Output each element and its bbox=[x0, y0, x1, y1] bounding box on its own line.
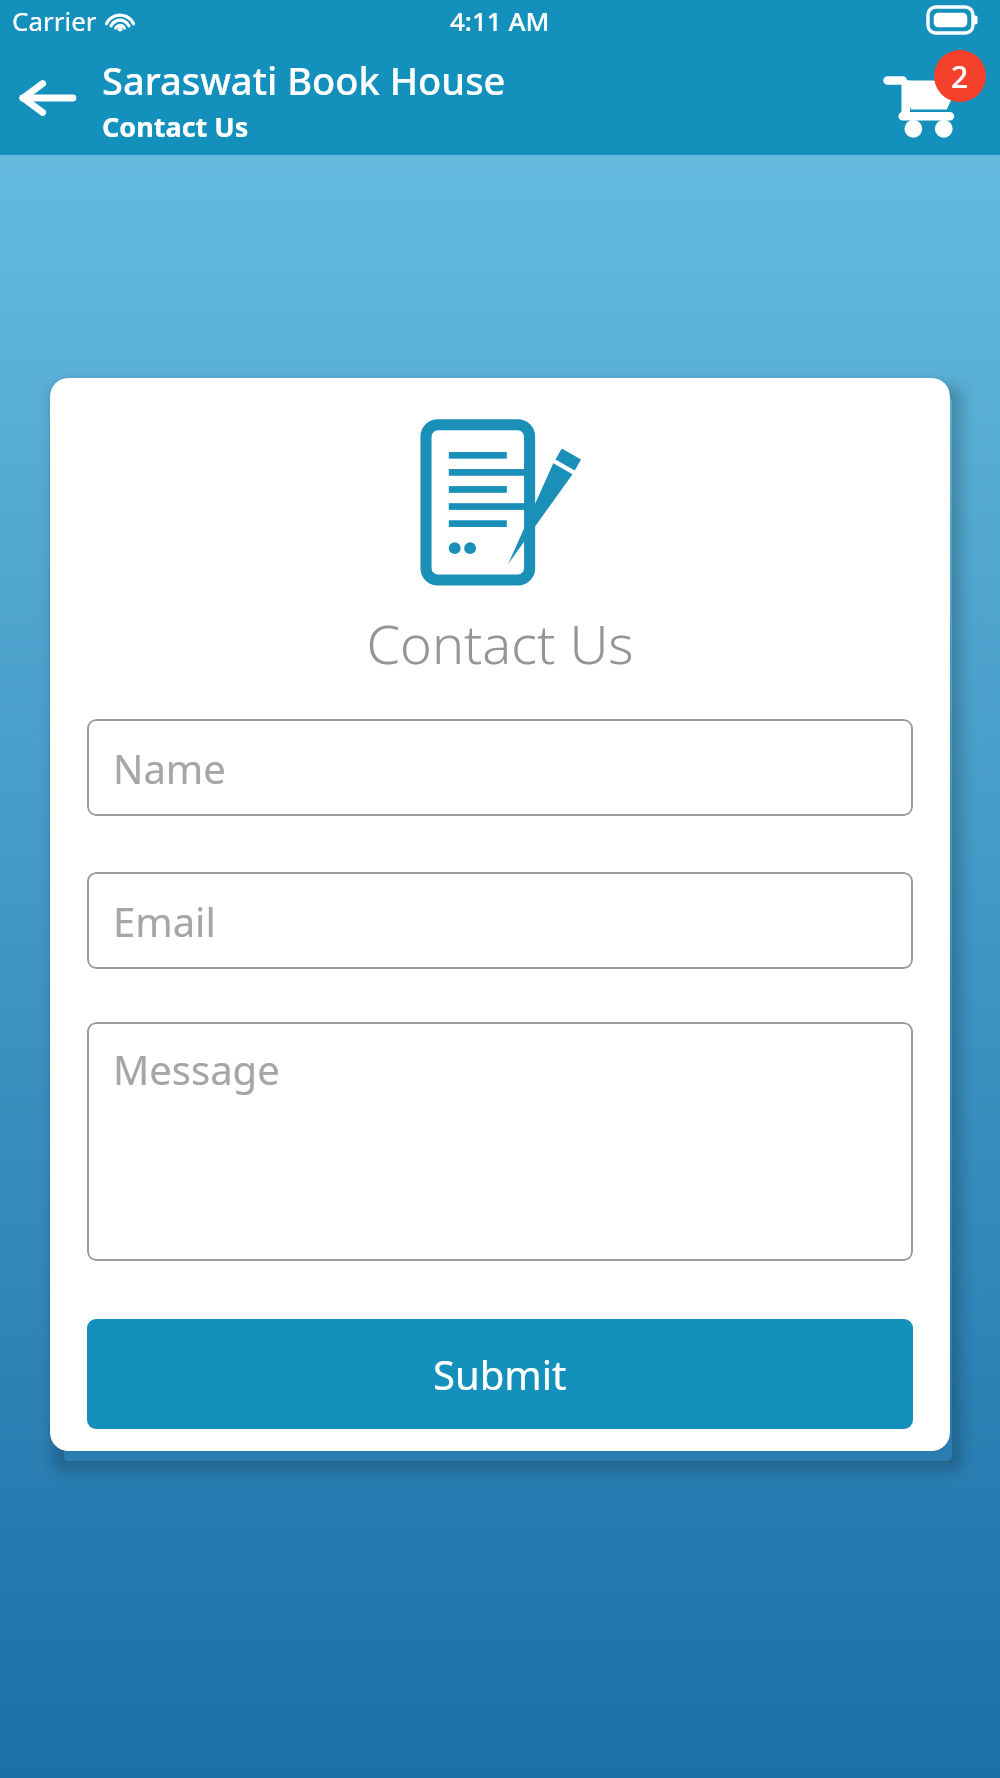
button[interactable]: Email bbox=[87, 872, 913, 969]
staticText: Carrier bbox=[12, 3, 97, 38]
button[interactable]: Cart, 2 items bbox=[878, 48, 988, 148]
button[interactable]: Name bbox=[87, 719, 913, 816]
staticText: 4:11 AM bbox=[450, 3, 550, 38]
staticText: Contact Us bbox=[102, 108, 249, 145]
staticText: Message bbox=[113, 1042, 280, 1096]
staticText: 2 bbox=[951, 56, 969, 97]
button[interactable]: Message bbox=[87, 1022, 913, 1261]
staticText: Name bbox=[113, 741, 226, 795]
button[interactable]: Back bbox=[10, 61, 84, 135]
staticText: Saraswati Book House bbox=[102, 54, 506, 106]
staticText: Email bbox=[113, 894, 216, 948]
staticText: Submit bbox=[433, 1347, 567, 1401]
staticText: Contact Us bbox=[366, 606, 634, 680]
button[interactable]: Submit bbox=[87, 1319, 913, 1429]
